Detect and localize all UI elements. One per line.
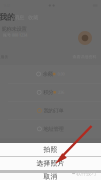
staticText: 选择照片 bbox=[36, 159, 64, 167]
staticText: 余额 bbox=[43, 71, 53, 77]
button[interactable]: 我的 bbox=[0, 12, 15, 22]
button[interactable]: Profile photo bbox=[78, 31, 92, 45]
staticText: 收藏 bbox=[28, 14, 38, 21]
button[interactable]: 余额 bbox=[33, 65, 68, 83]
button[interactable]: 选择照片 bbox=[0, 157, 101, 170]
staticText: 积分 bbox=[43, 89, 53, 96]
button[interactable]: 我的订单 bbox=[34, 101, 67, 120]
staticText: 我的 bbox=[0, 12, 15, 22]
staticText: 消息 bbox=[14, 14, 24, 21]
staticText: 查看详细资料 bbox=[72, 54, 96, 59]
button[interactable]: 积分 bbox=[34, 83, 67, 101]
staticText: 取消 bbox=[43, 172, 57, 180]
staticText: 昵称未设置 bbox=[1, 26, 26, 32]
button[interactable]: 拍照 bbox=[0, 143, 101, 156]
staticText: 拍照 bbox=[43, 145, 57, 154]
staticText: 服务 bbox=[0, 54, 8, 59]
staticText: 地址管理 bbox=[44, 126, 64, 132]
button[interactable]: 消息 bbox=[14, 14, 24, 21]
button[interactable]: 取消 bbox=[0, 173, 101, 180]
staticText: 账号 888 1234 bbox=[3, 32, 27, 38]
staticText: 软件技巧 bbox=[76, 170, 96, 177]
button[interactable]: 地址管理 bbox=[34, 120, 67, 138]
staticText: 我的订单 bbox=[44, 107, 64, 114]
button[interactable]: 收藏 bbox=[28, 14, 38, 21]
